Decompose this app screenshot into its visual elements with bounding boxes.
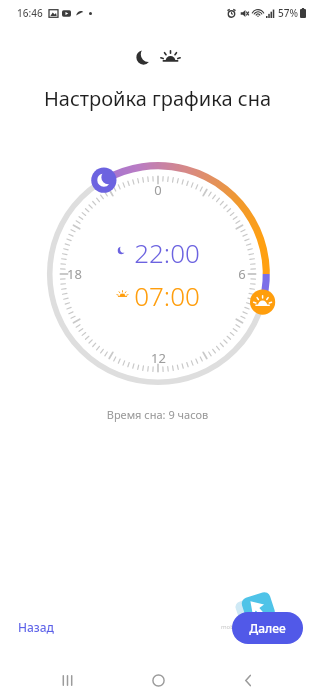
staticText: 12 [151,349,166,367]
staticText: 16:46 [17,6,43,20]
staticText: 57% [278,6,298,20]
button[interactable]: Back [224,660,272,700]
staticText: 18 [67,265,82,283]
staticText: 22:00 [134,235,200,270]
button[interactable]: Home [134,660,182,700]
staticText: 0 [154,181,162,199]
staticText: 6 [238,265,246,283]
button[interactable]: Recents [43,660,91,700]
staticText: Время сна: 9 часов [0,407,315,422]
button[interactable]: Назад [8,612,64,642]
staticText: 07:00 [134,278,200,313]
staticText: Далее [249,620,286,636]
button[interactable]: Далее [232,612,303,644]
staticText: Назад [18,619,54,635]
staticText: mobile-review.com [221,623,275,631]
staticText: Настройка графика сна [0,85,315,112]
